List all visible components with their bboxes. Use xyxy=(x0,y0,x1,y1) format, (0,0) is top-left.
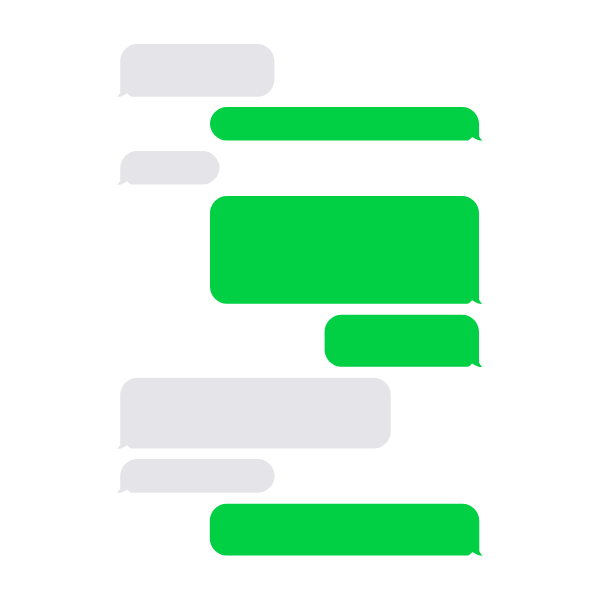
button[interactable]: Received message xyxy=(117,378,391,450)
button[interactable]: Sent message xyxy=(210,196,482,305)
button[interactable]: Sent message xyxy=(325,315,483,368)
button[interactable]: Sent message xyxy=(210,504,483,557)
button[interactable]: Received message xyxy=(117,151,219,186)
button[interactable]: Received message xyxy=(117,44,274,98)
button[interactable]: Sent message xyxy=(210,107,482,142)
button[interactable]: Received message xyxy=(117,459,274,494)
